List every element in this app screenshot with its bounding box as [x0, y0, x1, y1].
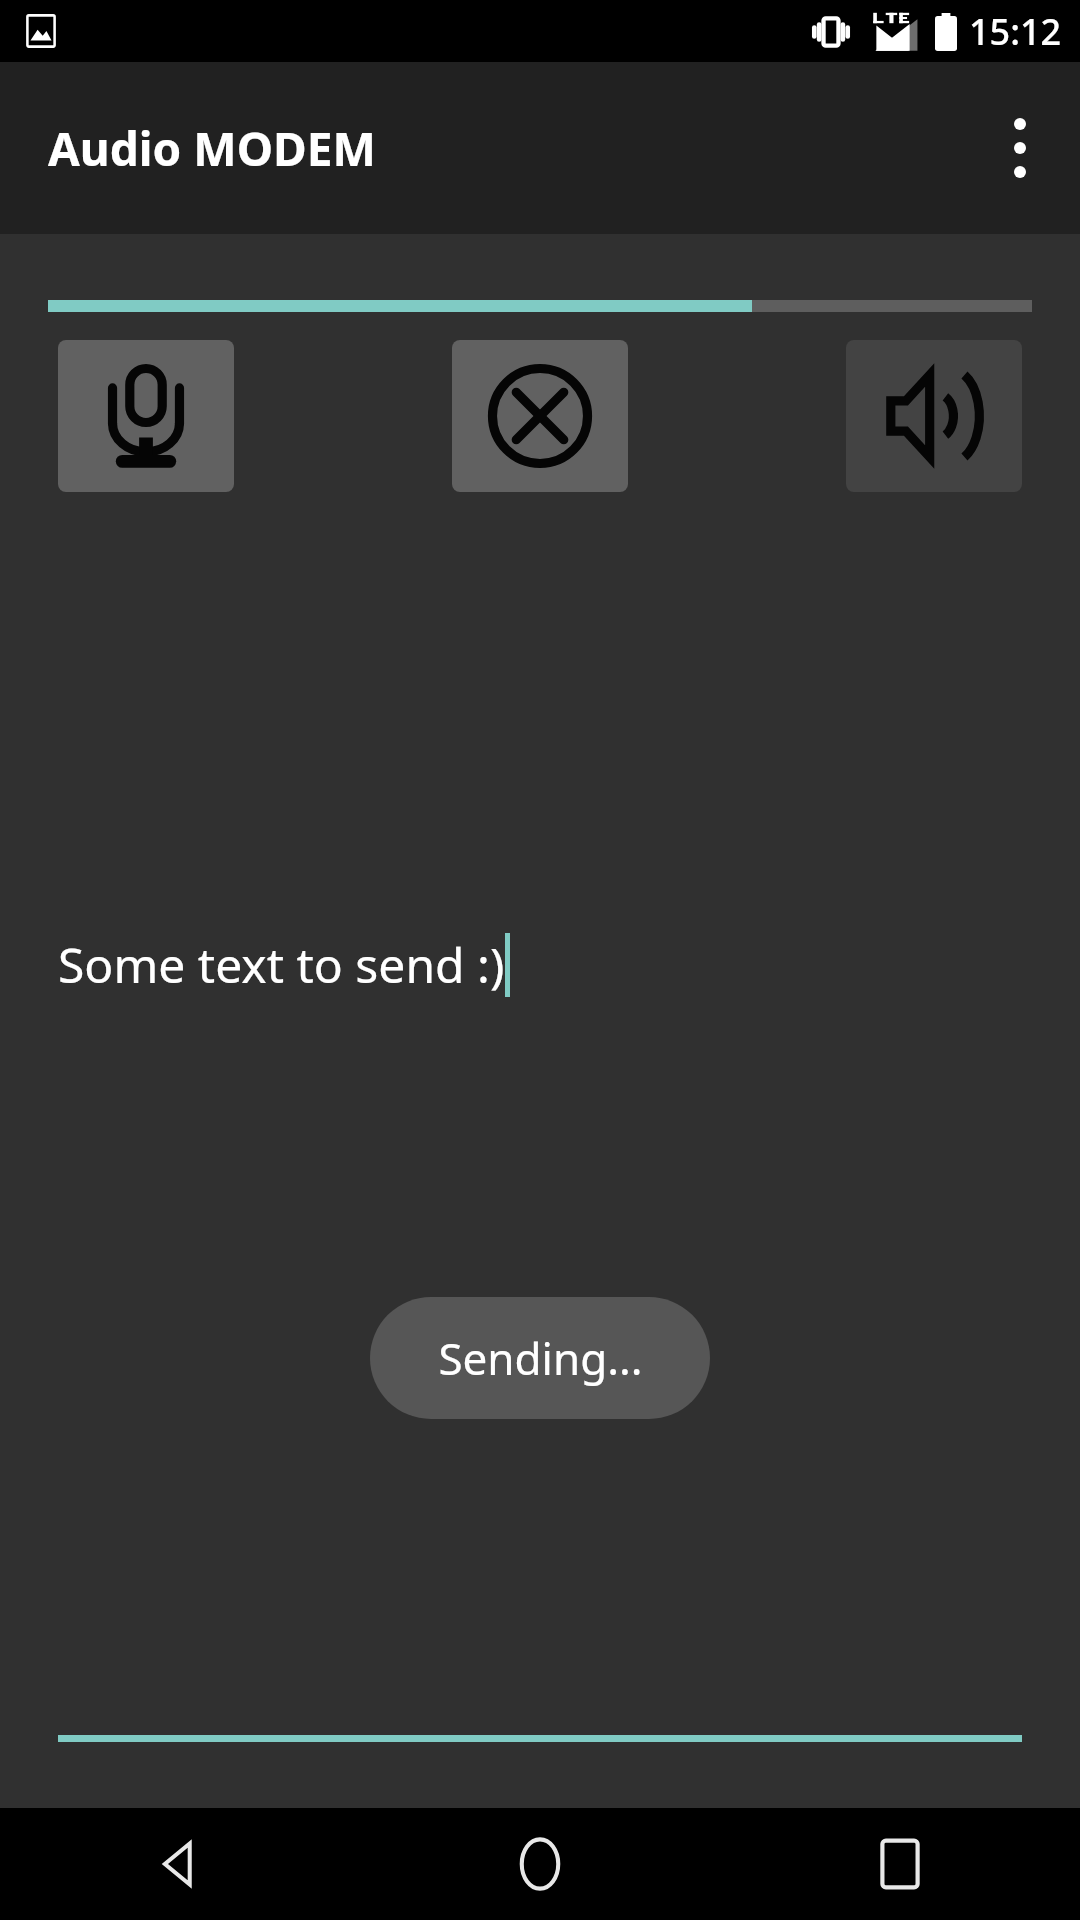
button[interactable]: Home — [360, 1808, 720, 1920]
staticText: Sending... — [438, 1328, 643, 1388]
button[interactable]: Sending... — [370, 1297, 710, 1419]
button[interactable]: Back — [0, 1808, 360, 1920]
button[interactable]: Recent apps — [720, 1808, 1080, 1920]
button[interactable]: More options — [972, 100, 1068, 196]
button[interactable]: Play through speaker — [846, 340, 1022, 492]
button[interactable]: Cancel — [452, 340, 628, 492]
button[interactable]: Some text to send :) — [58, 932, 1032, 997]
staticText: 15:12 — [969, 7, 1062, 56]
staticText: Audio MODEM — [48, 117, 376, 180]
button[interactable]: Record from microphone — [58, 340, 234, 492]
staticText: Some text to send :) — [58, 932, 505, 997]
